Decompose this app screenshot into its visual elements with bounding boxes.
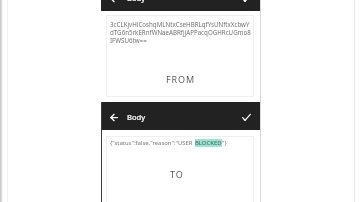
button[interactable]: Navigate up bbox=[110, 0, 118, 3]
button[interactable]: Navigate up bbox=[110, 113, 118, 122]
staticText: IFWSU6tw== bbox=[110, 36, 147, 44]
staticText: Body bbox=[127, 0, 146, 3]
staticText: dTG6n5rkERnfWNaeABRfjjAPPacqOGHRcUGmo8 bbox=[110, 28, 251, 36]
staticText: 3cCLKjvHiCoshqMLNtxCseHBRLqfYsUNftxXcbwY bbox=[110, 20, 250, 28]
button[interactable]: Save bbox=[242, 0, 251, 3]
staticText: FROM bbox=[166, 73, 196, 85]
staticText: "} bbox=[222, 139, 227, 147]
button[interactable]: Save bbox=[242, 113, 251, 122]
staticText: Body bbox=[127, 112, 146, 122]
staticText: TO bbox=[170, 168, 184, 180]
staticText: {"status":false,"reason":"USER bbox=[110, 139, 195, 147]
staticText: BLOCKED bbox=[195, 139, 222, 147]
